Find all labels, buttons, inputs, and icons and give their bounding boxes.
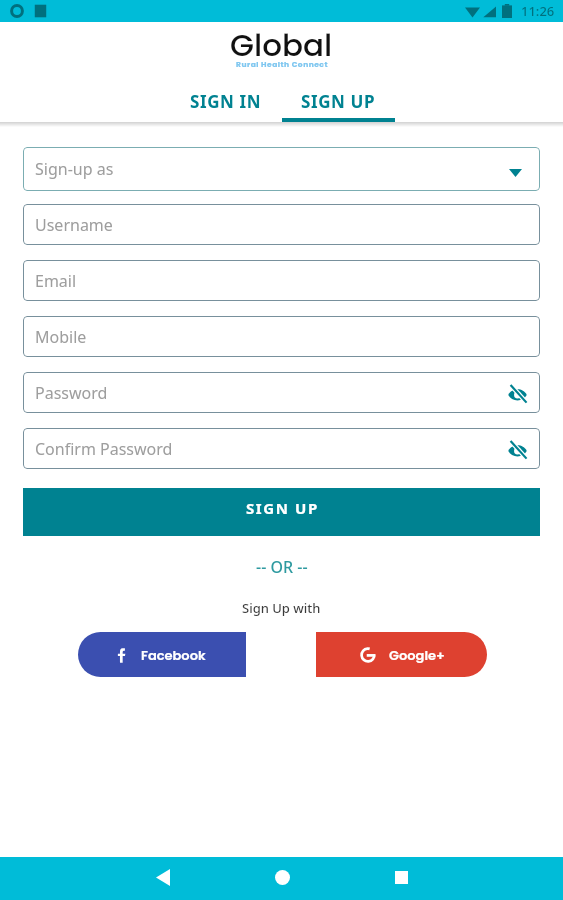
staticText: Sign Up with [242,599,321,617]
button[interactable]: SIGN IN [169,90,282,122]
button[interactable]: Google+ [316,632,487,677]
button[interactable]: SIGN UP [23,488,540,536]
button[interactable]: Toggle password visibility [505,381,529,405]
staticText: Sign-up as [35,158,114,180]
staticText: 11:26 [521,2,555,20]
button[interactable]: Facebook [78,632,246,677]
staticText: Email [35,270,77,292]
staticText: Password [35,382,108,404]
staticText: Username [35,214,113,236]
button[interactable]: Home [262,857,302,897]
staticText: Facebook [141,646,206,664]
button[interactable]: Sign-up as [23,147,540,191]
staticText: Global [230,23,333,66]
button[interactable]: Username [23,204,540,245]
button[interactable]: Toggle password visibility [505,437,529,461]
button[interactable]: Recents [381,857,421,897]
staticText: Mobile [35,326,87,348]
button[interactable]: Password [23,372,540,413]
staticText: SIGN UP [301,90,376,113]
staticText: -- OR -- [256,556,308,578]
button[interactable]: Email [23,260,540,301]
staticText: Confirm Password [35,438,173,460]
button[interactable]: Confirm Password [23,428,540,469]
button[interactable]: Back [143,857,183,897]
staticText: Google+ [389,646,445,664]
button[interactable]: Mobile [23,316,540,357]
staticText: SIGN UP [246,498,319,518]
button[interactable]: SIGN UP [282,90,395,122]
staticText: SIGN IN [190,90,262,113]
staticText: Rural Health Connect [236,59,328,69]
